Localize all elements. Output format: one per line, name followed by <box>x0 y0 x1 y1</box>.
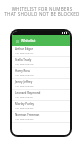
staticText: +91 8904 56778 <box>15 62 34 65</box>
staticText: Whitelist <box>21 38 36 43</box>
staticText: +91 8904 56782 <box>15 106 34 109</box>
button[interactable]: Norman Freeman <box>12 112 70 123</box>
staticText: +91 8904 56781 <box>15 95 34 98</box>
staticText: Jenny Jeffrey <box>15 80 33 84</box>
button[interactable]: Stella Trudy <box>12 57 70 68</box>
button[interactable]: Leonard Raymond <box>12 90 70 101</box>
button[interactable]: Menu <box>14 38 20 44</box>
staticText: Harry Ross <box>15 69 30 73</box>
staticText: Arthur Edgar <box>15 47 33 51</box>
staticText: +91 8904 56783 <box>15 117 34 120</box>
staticText: Norman Freeman <box>15 113 40 117</box>
staticText: +91 8904 56779 <box>15 73 34 76</box>
staticText: +91 8904 56780 <box>15 84 34 87</box>
button[interactable]: Harry Ross <box>12 68 70 79</box>
button[interactable]: Morley Purley <box>12 101 70 112</box>
staticText: +91 8904 56777 <box>15 51 34 54</box>
button[interactable]: Arthur Edgar <box>12 46 70 57</box>
staticText: Morley Purley <box>15 102 35 106</box>
staticText: WHITELIST FOR NUMBERS THAT SHOULD NOT BE… <box>4 6 80 17</box>
staticText: Leonard Raymond <box>15 91 41 95</box>
button[interactable]: Jenny Jeffrey <box>12 79 70 90</box>
staticText: Stella Trudy <box>15 58 32 62</box>
